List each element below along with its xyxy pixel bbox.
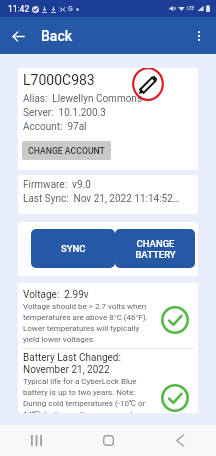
staticText: SYNC [61,243,86,254]
button[interactable]: Edit [132,68,164,101]
staticText: Voltage should be > 2.7 volts when tempe… [23,302,151,344]
staticText: Battery Last Changed: November 21, 2022 [23,352,121,376]
button[interactable]: Recent apps [0,425,72,456]
staticText: Firmware: v9.0 Last Sync: Nov 21, 2022 1… [23,179,180,205]
button[interactable]: More options [185,22,213,50]
button[interactable]: CHANGE ACCOUNT [22,141,111,160]
staticText: 11:42 [8,4,30,14]
staticText: CHANGE ACCOUNT [28,146,105,156]
staticText: Back [41,28,73,44]
staticText: CHANGE BATTERY [135,238,176,260]
button[interactable]: Home [72,425,144,456]
staticText: L7000C983 [23,72,95,88]
staticText: Typical life for a CyberLock Blue batter… [23,377,151,413]
button[interactable]: CHANGE BATTERY [115,229,195,268]
button[interactable]: Back [4,22,32,50]
staticText: G [68,5,73,13]
staticText: LTE [187,6,195,11]
staticText: Alias: Llewellyn Commons Server: 10.1.20… [23,93,143,133]
staticText: Voltage: 2.99v [23,289,89,301]
button[interactable]: SYNC [31,229,115,268]
button[interactable]: Back [144,425,216,456]
